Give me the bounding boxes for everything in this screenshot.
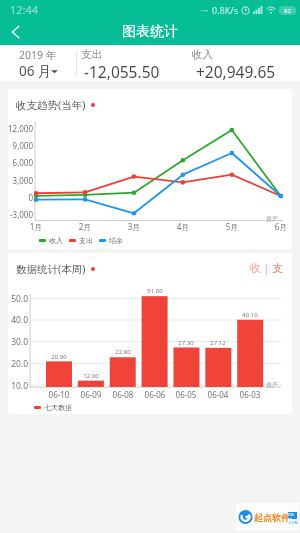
staticText: 10.0 xyxy=(8,380,28,392)
staticText: 50.0 xyxy=(8,293,28,305)
staticText: +20,949.65 xyxy=(196,61,276,82)
staticText: 06-05 xyxy=(170,389,202,400)
staticText: 22.80 xyxy=(108,348,138,356)
staticText: 资产 xyxy=(266,215,288,223)
staticText: 40.0 xyxy=(8,314,28,326)
staticText: 0 xyxy=(8,192,33,203)
staticText: 06-06 xyxy=(139,389,171,400)
staticText: 4月 xyxy=(168,221,198,232)
button[interactable]: 收 xyxy=(250,261,283,275)
staticText: -3,000 xyxy=(8,209,33,220)
staticText: 2月 xyxy=(70,221,100,232)
staticText: 51.00 xyxy=(140,287,170,295)
staticText: 82 xyxy=(284,7,291,15)
staticText: 06-08 xyxy=(107,389,139,400)
staticText: 20.90 xyxy=(44,353,74,361)
staticText: 0.8K/s xyxy=(212,4,238,16)
staticText: 12:44 xyxy=(10,2,39,17)
staticText: 支 xyxy=(272,261,283,275)
staticText: 收支趋势(当年) xyxy=(16,98,86,112)
staticText: 结余 xyxy=(109,236,123,245)
button[interactable]: 收支趋势(当年) xyxy=(8,89,292,249)
staticText: .COM xyxy=(288,520,299,525)
staticText: 1月 xyxy=(21,221,51,232)
staticText: 06-04 xyxy=(202,389,234,400)
staticText: 收 xyxy=(250,261,261,275)
staticText: 图表统计 xyxy=(122,23,178,41)
staticText: 支出 xyxy=(79,236,93,245)
button[interactable]: 2019 年 xyxy=(14,48,74,80)
staticText: 3月 xyxy=(119,221,149,232)
staticText: 20.0 xyxy=(8,358,28,370)
staticText: 支出 xyxy=(81,48,102,61)
staticText: ··· xyxy=(201,4,209,16)
staticText: -12,055.50 xyxy=(84,61,160,82)
staticText: 30.0 xyxy=(8,336,28,348)
staticText: 06-09 xyxy=(75,389,107,400)
staticText: 27.12 xyxy=(203,339,233,347)
staticText: 12,000 xyxy=(8,123,33,134)
staticText: 6,000 xyxy=(8,157,33,168)
staticText: 6月 xyxy=(266,221,292,232)
staticText: 2019 年 xyxy=(19,48,57,62)
staticText: 收入 xyxy=(49,236,63,245)
staticText: 06 月 xyxy=(19,62,52,80)
button[interactable]: 数据统计(本周) xyxy=(8,253,292,414)
button[interactable]: Back xyxy=(0,19,32,44)
staticText: 06-03 xyxy=(234,389,266,400)
staticText: 收入 xyxy=(192,48,213,61)
staticText: 40.10 xyxy=(235,311,265,319)
staticText: 5月 xyxy=(217,221,247,232)
staticText: | xyxy=(261,261,272,275)
staticText: 3,000 xyxy=(8,175,33,186)
staticText: 数据统计(本周) xyxy=(16,262,86,276)
staticText: COM xyxy=(288,512,297,519)
staticText: 12.00 xyxy=(76,372,106,380)
staticText: 起点软件 xyxy=(254,512,290,523)
staticText: 七天数据 xyxy=(44,403,72,412)
staticText: 06-10 xyxy=(43,389,75,400)
staticText: 27.30 xyxy=(171,339,201,347)
staticText: 9,000 xyxy=(8,140,33,151)
staticText: 资产 xyxy=(266,381,288,389)
